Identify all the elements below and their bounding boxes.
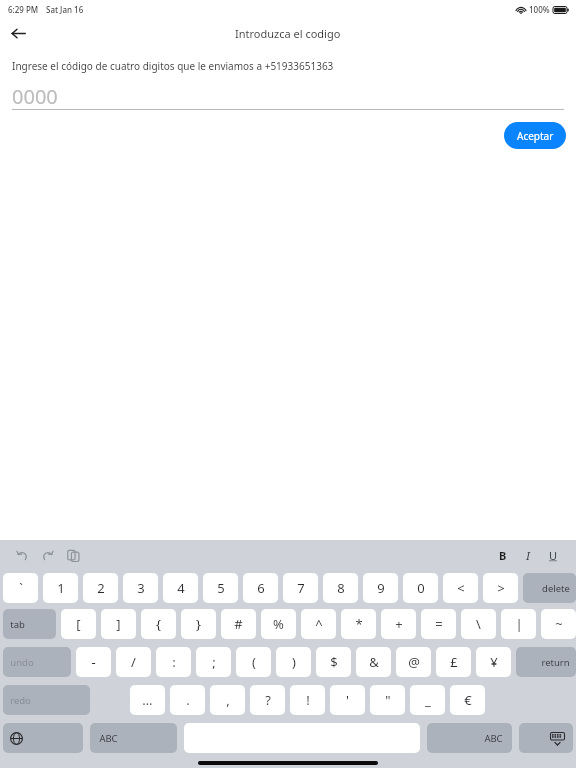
button[interactable]: ¥ xyxy=(476,647,511,677)
button[interactable]: ] xyxy=(101,609,136,639)
staticText: 6:29 PM xyxy=(8,4,39,15)
button[interactable]: \ xyxy=(461,609,496,639)
staticText: 3 xyxy=(137,579,145,597)
staticText: undo xyxy=(10,656,34,669)
staticText: 0 xyxy=(417,579,425,597)
staticText: ` xyxy=(19,579,23,597)
button[interactable]: 7 xyxy=(283,573,318,603)
button[interactable]: / xyxy=(116,647,151,677)
staticText: \ xyxy=(476,615,481,633)
button[interactable]: 5 xyxy=(203,573,238,603)
button[interactable]: [ xyxy=(61,609,96,639)
button[interactable]: … xyxy=(130,685,165,715)
button[interactable]: 6 xyxy=(243,573,278,603)
button[interactable]: 8 xyxy=(323,573,358,603)
button[interactable]: - xyxy=(76,647,111,677)
staticText: = xyxy=(435,615,443,633)
button[interactable]: ! xyxy=(290,685,325,715)
button[interactable]: 2 xyxy=(83,573,118,603)
staticText: Sat Jan 16 xyxy=(46,4,84,15)
staticText: ; xyxy=(212,653,216,671)
button[interactable]: Undo xyxy=(12,545,32,565)
button[interactable]: Back xyxy=(4,19,32,47)
button[interactable]: ) xyxy=(276,647,311,677)
button[interactable]: ` xyxy=(3,573,38,603)
staticText: - xyxy=(91,653,96,671)
button[interactable]: U xyxy=(542,544,564,566)
button[interactable]: Aceptar xyxy=(504,122,566,149)
button[interactable]: _ xyxy=(410,685,445,715)
button[interactable]: < xyxy=(443,573,478,603)
staticText: … xyxy=(142,691,153,709)
staticText: _ xyxy=(425,691,431,709)
button[interactable]: 0 xyxy=(403,573,438,603)
button[interactable]: redo xyxy=(3,685,90,715)
button[interactable]: @ xyxy=(396,647,431,677)
button[interactable]: Paste xyxy=(63,545,83,565)
button[interactable]: > xyxy=(483,573,518,603)
button[interactable]: Hide keyboard xyxy=(519,723,573,753)
button[interactable]: 4 xyxy=(163,573,198,603)
button[interactable]: : xyxy=(156,647,191,677)
staticText: 8 xyxy=(337,579,345,597)
button[interactable]: delete xyxy=(523,573,576,603)
staticText: ] xyxy=(116,615,121,633)
staticText: 4 xyxy=(177,579,185,597)
staticText: ~ xyxy=(555,615,563,633)
button[interactable]: ? xyxy=(250,685,285,715)
button[interactable]: } xyxy=(181,609,216,639)
staticText: redo xyxy=(10,694,31,707)
button[interactable]: ; xyxy=(196,647,231,677)
button[interactable]: + xyxy=(381,609,416,639)
staticText: 6 xyxy=(257,579,265,597)
button[interactable]: { xyxy=(141,609,176,639)
staticText: : xyxy=(172,653,176,671)
staticText: Ingrese el código de cuatro digitos que … xyxy=(12,59,334,73)
button[interactable]: Change keyboard language xyxy=(3,723,83,753)
button[interactable]: ABC xyxy=(90,723,177,753)
button[interactable]: " xyxy=(370,685,405,715)
staticText: 5 xyxy=(217,579,225,597)
button[interactable]: * xyxy=(341,609,376,639)
button[interactable]: ' xyxy=(330,685,365,715)
button[interactable]: £ xyxy=(436,647,471,677)
button[interactable]: tab xyxy=(3,609,56,639)
button[interactable]: return xyxy=(516,647,576,677)
button[interactable]: ~ xyxy=(541,609,576,639)
staticText: 100% xyxy=(529,4,550,15)
staticText: # xyxy=(234,615,243,633)
button[interactable]: , xyxy=(210,685,245,715)
button[interactable]: B xyxy=(492,544,514,566)
button[interactable]: # xyxy=(221,609,256,639)
staticText: ABC xyxy=(99,732,118,745)
staticText: 2 xyxy=(97,579,105,597)
button[interactable]: ( xyxy=(236,647,271,677)
button[interactable]: 3 xyxy=(123,573,158,603)
button[interactable]: $ xyxy=(316,647,351,677)
staticText: ) xyxy=(292,653,296,671)
staticText: , xyxy=(226,691,230,709)
button[interactable]: I xyxy=(517,544,539,566)
button[interactable]: = xyxy=(421,609,456,639)
button[interactable]: % xyxy=(261,609,296,639)
button[interactable]: 9 xyxy=(363,573,398,603)
button[interactable]: € xyxy=(450,685,485,715)
staticText: ^ xyxy=(315,615,323,633)
staticText: % xyxy=(273,615,284,633)
button[interactable]: & xyxy=(356,647,391,677)
staticText: . xyxy=(186,691,190,709)
staticText: / xyxy=(131,653,136,671)
button[interactable]: Redo xyxy=(37,545,57,565)
staticText: 1 xyxy=(57,579,65,597)
staticText: £ xyxy=(450,653,458,671)
staticText: ? xyxy=(265,691,271,709)
button[interactable]: undo xyxy=(3,647,71,677)
button[interactable]: . xyxy=(170,685,205,715)
button[interactable]: ABC xyxy=(427,723,512,753)
button[interactable]: 1 xyxy=(43,573,78,603)
staticText: < xyxy=(457,579,465,597)
button[interactable]: | xyxy=(501,609,536,639)
button[interactable]: ^ xyxy=(301,609,336,639)
staticText: € xyxy=(464,691,472,709)
